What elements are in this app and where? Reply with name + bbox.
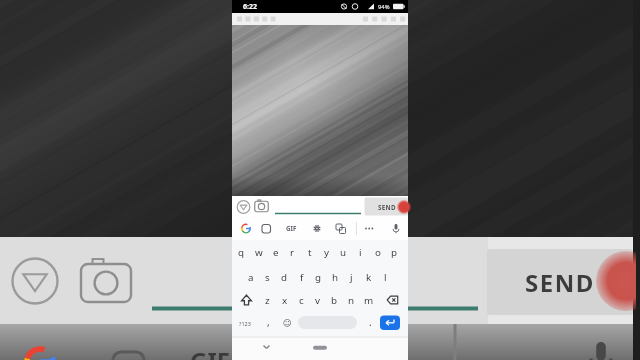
staticText: t — [308, 246, 312, 259]
staticText: x — [282, 294, 288, 307]
button[interactable]: j — [343, 269, 360, 286]
staticText: SEND — [525, 266, 595, 299]
button[interactable]: l — [377, 269, 394, 286]
button[interactable]: c — [293, 292, 310, 309]
staticText: GIF — [286, 224, 297, 233]
button[interactable]: f — [293, 269, 310, 286]
button[interactable]: b — [326, 292, 343, 309]
button[interactable]: s — [259, 269, 276, 286]
staticText: y — [324, 246, 329, 259]
button[interactable]: r — [284, 244, 301, 261]
staticText: . — [369, 315, 372, 329]
staticText: c — [299, 294, 304, 307]
button[interactable] — [259, 221, 273, 236]
button[interactable] — [237, 199, 251, 214]
staticText: SEND — [378, 203, 396, 212]
button[interactable]: m — [360, 292, 377, 309]
staticText: u — [340, 246, 347, 259]
staticText: z — [265, 294, 270, 307]
button[interactable] — [331, 221, 346, 236]
staticText: h — [332, 271, 339, 284]
staticText: , — [267, 315, 270, 329]
button[interactable]: SEND — [365, 198, 409, 216]
staticText: ☺ — [283, 318, 292, 328]
staticText: f — [300, 271, 304, 284]
button[interactable]: e — [267, 244, 284, 261]
button[interactable]: h — [327, 269, 344, 286]
button[interactable]: z — [259, 292, 276, 309]
button[interactable]: o — [369, 244, 386, 261]
staticText: r — [290, 246, 295, 259]
button[interactable] — [380, 315, 400, 330]
staticText: l — [384, 271, 387, 284]
button[interactable] — [310, 221, 324, 236]
staticText: k — [366, 271, 372, 284]
button[interactable]: q — [233, 244, 250, 261]
button[interactable]: g — [310, 269, 327, 286]
button[interactable]: x — [276, 292, 293, 309]
button[interactable] — [298, 316, 357, 329]
button[interactable] — [238, 293, 255, 308]
staticText: p — [391, 246, 398, 259]
button[interactable]: t — [301, 244, 318, 261]
button[interactable] — [385, 293, 402, 308]
button[interactable]: v — [309, 292, 326, 309]
button[interactable] — [308, 342, 332, 353]
button[interactable]: y — [318, 244, 335, 261]
button[interactable] — [389, 221, 403, 236]
button[interactable] — [254, 199, 269, 214]
button[interactable]: n — [343, 292, 360, 309]
button[interactable]: ?123 — [236, 316, 254, 330]
button[interactable] — [361, 221, 376, 236]
staticText: n — [348, 294, 355, 307]
button[interactable]: ☺ — [280, 316, 294, 330]
staticText: e — [273, 246, 279, 259]
button[interactable]: , — [261, 314, 275, 330]
staticText: v — [315, 294, 320, 307]
button[interactable]: p — [386, 244, 403, 261]
button[interactable]: GIF — [283, 221, 300, 236]
button[interactable]: k — [360, 269, 377, 286]
staticText: b — [331, 294, 338, 307]
staticText: q — [238, 246, 245, 259]
button[interactable]: i — [352, 244, 369, 261]
staticText: o — [375, 246, 381, 259]
button[interactable]: w — [250, 244, 267, 261]
staticText: a — [248, 271, 254, 284]
staticText: i — [359, 246, 362, 259]
button[interactable] — [240, 221, 253, 236]
staticText: 94% — [378, 3, 390, 11]
staticText: d — [281, 271, 288, 284]
button[interactable]: . — [363, 314, 377, 330]
button[interactable]: u — [335, 244, 352, 261]
staticText: g — [315, 271, 322, 284]
staticText: GIF — [190, 344, 230, 360]
staticText: w — [255, 246, 263, 259]
staticText: j — [350, 271, 353, 284]
button[interactable]: a — [242, 269, 259, 286]
staticText: ?123 — [239, 320, 251, 327]
button[interactable]: d — [276, 269, 293, 286]
staticText: 6:22 — [243, 2, 257, 12]
staticText: m — [364, 294, 374, 307]
button[interactable] — [259, 341, 274, 353]
staticText: s — [265, 271, 270, 284]
